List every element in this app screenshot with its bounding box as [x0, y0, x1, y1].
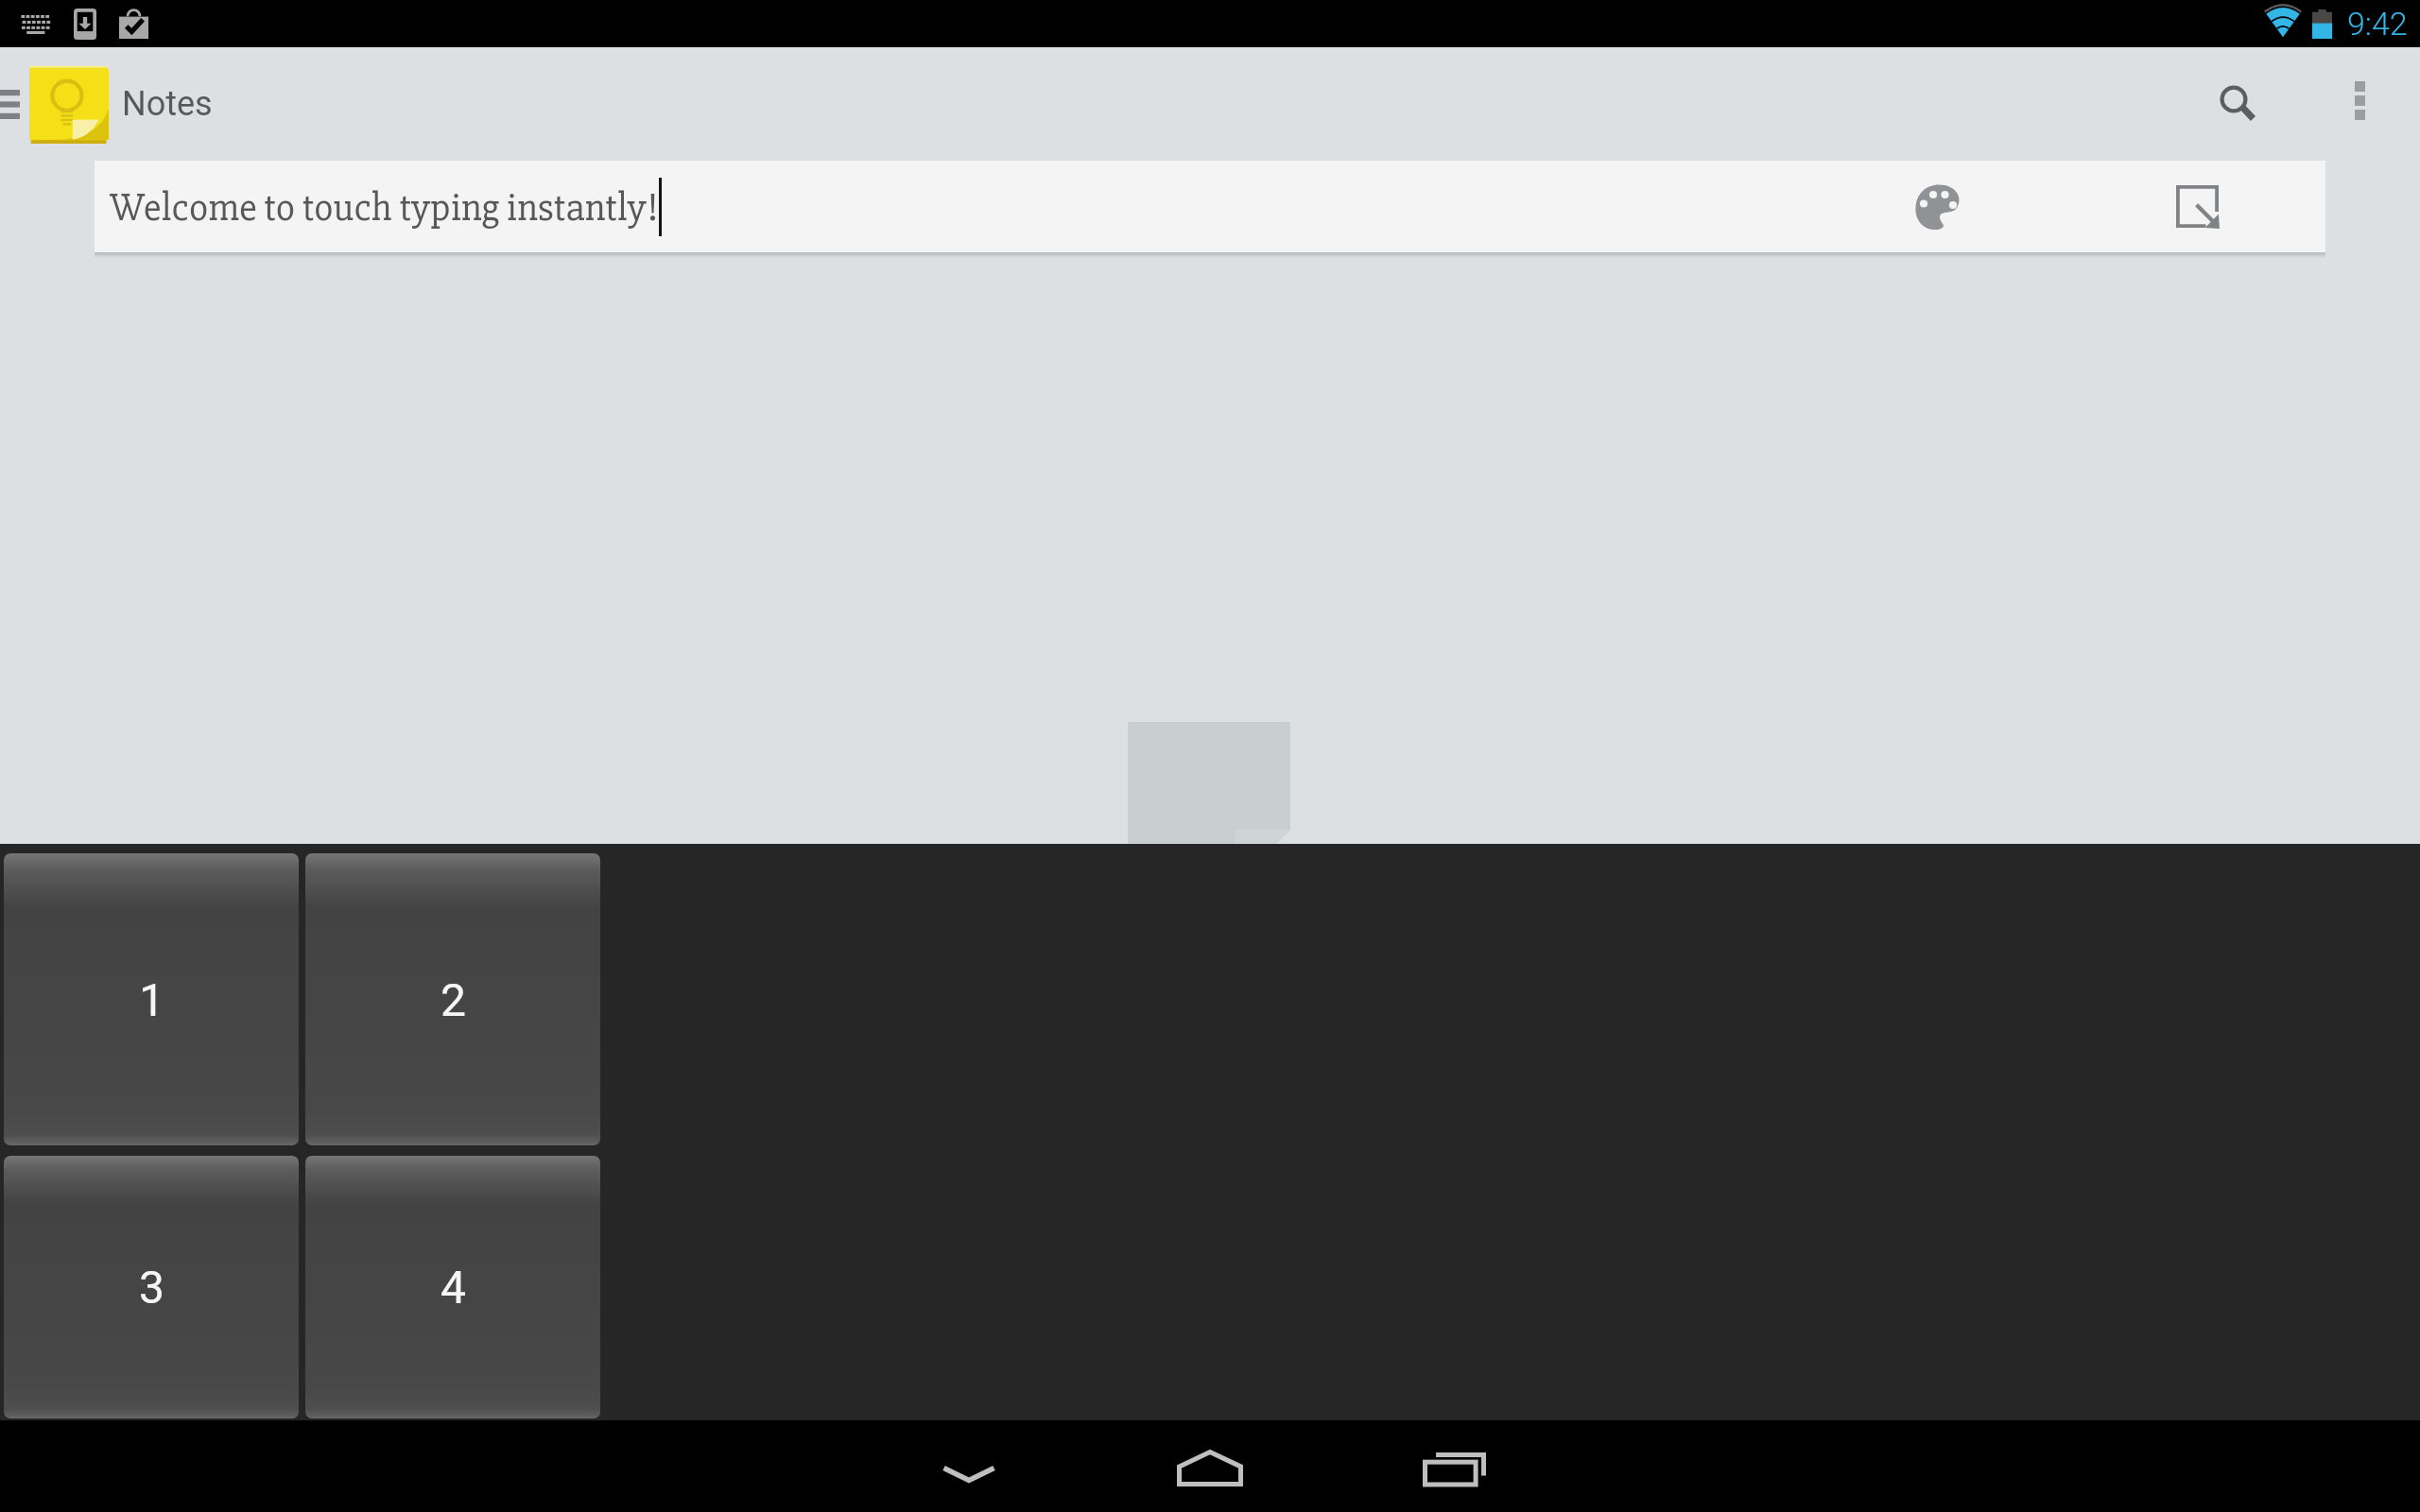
staticText: 3: [139, 1261, 164, 1314]
button[interactable]: 1: [4, 853, 299, 1145]
button[interactable]: Recent apps: [1392, 1431, 1515, 1507]
button[interactable]: Home: [1149, 1432, 1271, 1504]
staticText: 1: [139, 973, 164, 1026]
button[interactable]: Search: [2187, 47, 2290, 161]
button[interactable]: Expand note: [2150, 161, 2244, 252]
button[interactable]: Welcome to touch typing instantly!: [95, 161, 2325, 252]
staticText: 4: [441, 1261, 466, 1314]
staticText: 9:42: [2347, 5, 2408, 43]
button[interactable]: Change color: [1892, 161, 1986, 252]
staticText: Welcome to touch typing instantly!: [110, 183, 659, 232]
staticText: Notes: [122, 84, 213, 124]
staticText: 2: [441, 973, 466, 1026]
button[interactable]: 2: [305, 853, 600, 1145]
button[interactable]: Notes: [29, 64, 213, 144]
button[interactable]: Hide keyboard: [907, 1440, 1030, 1508]
button[interactable]: 3: [4, 1156, 299, 1418]
button[interactable]: Open navigation drawer: [0, 64, 25, 144]
button[interactable]: More options: [2308, 43, 2411, 157]
button[interactable]: 4: [305, 1156, 600, 1418]
